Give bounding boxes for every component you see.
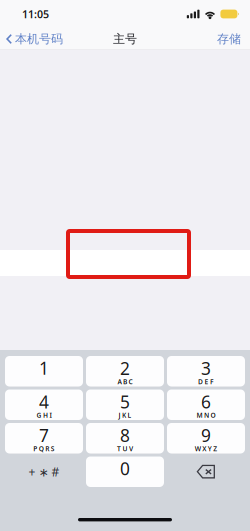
button[interactable]: 1 xyxy=(5,356,83,386)
button[interactable]: 存储 xyxy=(210,28,250,50)
staticText: 0 xyxy=(120,457,130,480)
button[interactable]: 4 xyxy=(5,389,83,420)
staticText: ABC xyxy=(117,377,132,386)
staticText: 存储 xyxy=(217,32,241,46)
staticText: MNO xyxy=(196,411,215,420)
button[interactable]: 5 xyxy=(86,389,164,420)
button[interactable]: 0 xyxy=(86,456,164,487)
staticText: 4 xyxy=(39,390,49,413)
button[interactable]: 6 xyxy=(167,389,245,420)
staticText: 11:05 xyxy=(22,7,49,21)
staticText: WXYZ xyxy=(195,444,217,453)
staticText: DEF xyxy=(198,377,214,386)
staticText: 5 xyxy=(120,390,130,413)
staticText: 2 xyxy=(120,357,130,380)
button[interactable]: 2 xyxy=(86,356,164,386)
button[interactable]: Delete xyxy=(167,456,245,487)
staticText: 7 xyxy=(39,424,49,447)
staticText: 6 xyxy=(201,390,211,413)
staticText: JKL xyxy=(118,411,131,420)
button[interactable]: 本机号码 xyxy=(0,28,69,50)
staticText: + ∗ # xyxy=(28,464,59,480)
button[interactable]: + ∗ # xyxy=(5,456,83,487)
staticText: 主号 xyxy=(113,32,137,46)
staticText: 9 xyxy=(201,424,211,447)
staticText: PQRS xyxy=(33,444,55,453)
staticText: 8 xyxy=(120,424,130,447)
staticText: GHI xyxy=(36,411,51,420)
button[interactable]: 3 xyxy=(167,356,245,386)
staticText: 1 xyxy=(39,357,49,380)
staticText: TUV xyxy=(117,444,133,453)
button[interactable]: 7 xyxy=(5,423,83,453)
button[interactable]: 8 xyxy=(86,423,164,453)
staticText: 3 xyxy=(201,357,211,380)
staticText: 本机号码 xyxy=(15,32,63,46)
button[interactable]: 9 xyxy=(167,423,245,453)
